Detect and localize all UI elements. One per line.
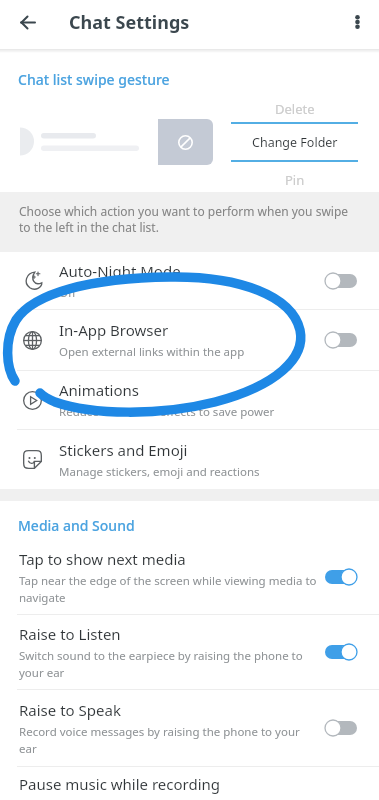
staticText: Reduce animation effects to save power — [59, 404, 275, 420]
button[interactable]: Stickers and Emoji — [0, 430, 379, 489]
staticText: In-App Browser — [59, 320, 169, 340]
button[interactable]: Raise to Listen — [0, 615, 379, 689]
button[interactable]: More options — [333, 0, 379, 46]
button[interactable]: Pin — [231, 167, 358, 193]
button[interactable]: Toggle Raise to Speak — [325, 718, 357, 738]
staticText: Manage stickers, emoji and reactions — [59, 464, 260, 480]
staticText: Delete — [275, 100, 315, 118]
staticText: Animations — [59, 380, 139, 400]
staticText: Raise to Speak — [19, 700, 121, 720]
staticText: Chat Settings — [69, 10, 190, 35]
button[interactable]: Toggle In-App Browser — [325, 330, 357, 350]
button[interactable]: Back — [4, 0, 51, 47]
staticText: Switch sound to the earpiece by raising … — [19, 648, 318, 680]
button[interactable]: Raise to Speak — [0, 690, 379, 766]
button[interactable]: Auto-Night Mode — [0, 252, 379, 309]
button[interactable]: Toggle Raise to Listen — [325, 642, 357, 662]
button[interactable]: Tap to show next media — [0, 539, 379, 614]
button[interactable]: Animations — [0, 371, 379, 429]
staticText: Chat list swipe gesture — [18, 70, 170, 89]
button[interactable]: Change Folder — [231, 124, 358, 160]
button[interactable]: Delete — [231, 95, 358, 122]
button[interactable]: Pause music while recording — [0, 767, 379, 800]
staticText: Record voice messages by raising the pho… — [19, 724, 318, 756]
staticText: Pin — [285, 171, 305, 189]
staticText: Choose which action you want to perform … — [19, 203, 359, 236]
staticText: Auto-Night Mode — [59, 261, 181, 281]
button[interactable]: Toggle Tap to show next media — [325, 567, 357, 587]
staticText: Tap to show next media — [19, 549, 186, 569]
staticText: Stickers and Emoji — [59, 440, 188, 460]
staticText: Change Folder — [252, 134, 338, 151]
button[interactable]: Toggle Auto-Night Mode — [325, 271, 357, 291]
staticText: Open external links within the app — [59, 344, 245, 360]
staticText: Tap near the edge of the screen while vi… — [19, 573, 318, 605]
staticText: Media and Sound — [18, 516, 135, 535]
button[interactable]: In-App Browser — [0, 310, 379, 370]
staticText: Pause music while recording — [19, 774, 221, 794]
staticText: Raise to Listen — [19, 624, 121, 644]
staticText: Off — [59, 285, 76, 301]
